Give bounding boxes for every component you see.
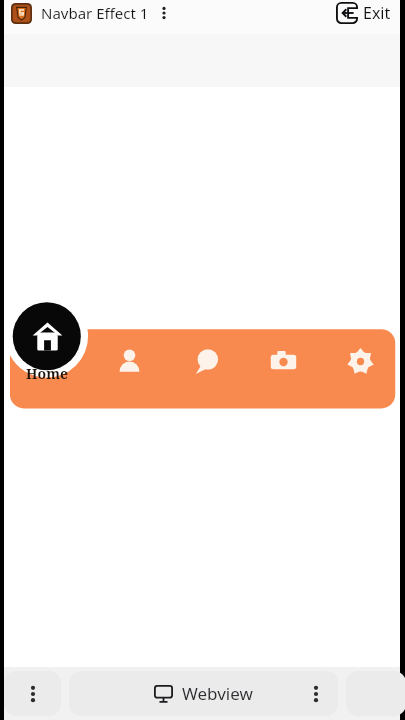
button[interactable]: Exit (334, 0, 393, 26)
button[interactable]: Camera (255, 333, 311, 389)
other: Exit (336, 2, 358, 24)
button[interactable]: Profile (101, 333, 157, 389)
staticText: Webview (182, 682, 253, 705)
button[interactable]: Home (13, 302, 81, 370)
staticText: Home (26, 364, 68, 383)
button[interactable]: Webview (69, 671, 338, 716)
button[interactable]: Messages (178, 333, 234, 389)
button[interactable]: More options (155, 4, 173, 22)
button[interactable]: More (4, 671, 61, 716)
button[interactable]: Tab options (294, 671, 338, 716)
button[interactable]: Settings (332, 333, 388, 389)
staticText: Exit (363, 2, 391, 24)
button[interactable]: Next tab (346, 671, 405, 716)
staticText: Navbar Effect 1 (41, 3, 149, 23)
button[interactable]: HTML5 app icon (11, 3, 32, 24)
